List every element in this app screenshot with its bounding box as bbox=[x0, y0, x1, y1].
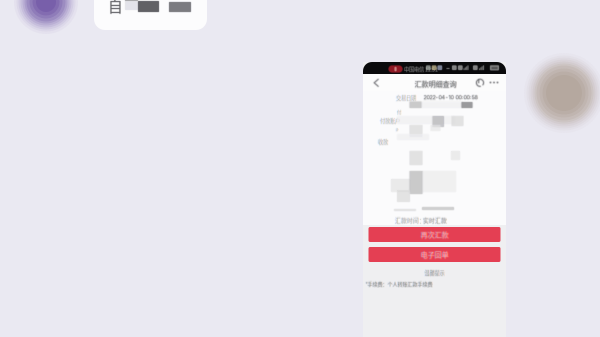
staticText: *手续费：个人转账汇款手续费 bbox=[365, 279, 432, 286]
button[interactable]: 返回 bbox=[367, 74, 385, 91]
staticText: 汇款时间： bbox=[394, 217, 424, 225]
staticText: 实时汇款 bbox=[423, 215, 447, 223]
staticText: 实时汇款 bbox=[424, 216, 448, 224]
staticText: 2022-04-10 00:00:58 bbox=[423, 95, 477, 101]
staticText: *手续费：个人转账汇款手续费 bbox=[366, 280, 433, 287]
staticText: 再次汇款 bbox=[420, 230, 448, 240]
staticText: 温馨提示 bbox=[424, 268, 444, 276]
staticText: *手续费：个人转账汇款手续费 bbox=[366, 281, 433, 288]
staticText: 电子回单 bbox=[421, 249, 449, 260]
staticText: 交易日期 bbox=[396, 95, 416, 102]
staticText: 自 bbox=[108, 0, 123, 16]
staticText: 中国电信 12:51 bbox=[405, 66, 439, 73]
staticText: 付款账户 bbox=[380, 116, 400, 124]
staticText: 汇款时间： bbox=[395, 217, 425, 225]
staticText: 2022-04-10 00:00:58 bbox=[423, 94, 477, 101]
staticText: 付 bbox=[397, 110, 401, 116]
staticText: 2022-04-10 00:00:58 bbox=[424, 93, 478, 100]
staticText: 再次汇款 bbox=[420, 229, 448, 240]
staticText: 汇款明细查询 bbox=[415, 79, 457, 90]
staticText: 收款 bbox=[377, 138, 387, 145]
staticText: 自 bbox=[107, 0, 122, 16]
staticText: 收款 bbox=[379, 137, 389, 145]
button[interactable]: 电子回单 bbox=[368, 247, 500, 262]
staticText: 电子回单 bbox=[420, 250, 448, 260]
staticText: 付款账户 bbox=[379, 117, 399, 124]
staticText: 汇款时间： bbox=[394, 216, 424, 224]
staticText: 汇款时间： bbox=[396, 215, 426, 223]
staticText: 汇款明细查询 bbox=[414, 79, 456, 90]
staticText: 自 bbox=[108, 0, 123, 17]
staticText: 汇款时间： bbox=[396, 216, 426, 224]
staticText: 中国电信 12:51 bbox=[404, 65, 438, 72]
staticText: 电子回单 bbox=[420, 250, 448, 260]
staticText: 实时汇款 bbox=[424, 215, 448, 223]
staticText: 实时汇款 bbox=[422, 215, 446, 223]
staticText: 温馨提示 bbox=[424, 269, 444, 276]
staticText: 2022-04-10 00:00:58 bbox=[423, 93, 477, 100]
staticText: 2022-04-10 00:00:58 bbox=[424, 94, 478, 101]
button[interactable]: 刷新 bbox=[472, 74, 488, 91]
staticText: 再次汇款 bbox=[420, 229, 448, 240]
staticText: 付 bbox=[398, 110, 402, 116]
staticText: 再次汇款 bbox=[421, 229, 449, 240]
staticText: 付款账户 bbox=[381, 118, 401, 125]
staticText: *手续费：个人转账汇款手续费 bbox=[365, 280, 432, 287]
staticText: 汇款明细查询 bbox=[415, 78, 457, 88]
staticText: 汇款明细查询 bbox=[414, 78, 456, 88]
staticText: P bbox=[396, 128, 398, 132]
button[interactable]: 再次汇款 bbox=[368, 227, 500, 242]
staticText: 收款 bbox=[379, 139, 389, 146]
staticText: 温馨提示 bbox=[424, 270, 444, 277]
staticText: 再次汇款 bbox=[421, 230, 449, 240]
staticText: 温馨提示 bbox=[424, 270, 444, 277]
staticText: 收款 bbox=[378, 139, 388, 146]
staticText: 自 bbox=[108, 0, 123, 16]
staticText: 再次汇款 bbox=[421, 228, 449, 239]
staticText: 电子回单 bbox=[421, 248, 449, 259]
staticText: 中国电信 12:51 bbox=[403, 65, 437, 72]
staticText: 中国电信 12:51 bbox=[405, 65, 439, 72]
staticText: 汇款时间： bbox=[396, 217, 426, 225]
staticText: 汇款时间： bbox=[395, 216, 425, 224]
staticText: 汇款明细查询 bbox=[415, 78, 457, 89]
staticText: 中国电信 12:51 bbox=[405, 65, 439, 73]
staticText: 付款账户 bbox=[380, 117, 400, 124]
staticText: 付 bbox=[396, 108, 400, 114]
staticText: 自 bbox=[108, 0, 123, 16]
staticText: 电子回单 bbox=[420, 248, 448, 259]
staticText: 汇款明细查询 bbox=[414, 78, 456, 89]
staticText: 汇款时间： bbox=[395, 215, 425, 223]
staticText: 再次汇款 bbox=[420, 228, 448, 239]
staticText: *手续费：个人转账汇款手续费 bbox=[365, 281, 432, 288]
button[interactable]: 更多 bbox=[487, 74, 501, 91]
staticText: 实时汇款 bbox=[422, 217, 446, 225]
staticText: 交易日期 bbox=[397, 94, 417, 101]
staticText: 付款账户 bbox=[379, 118, 399, 125]
staticText: 收款 bbox=[378, 137, 388, 145]
staticText: *手续费：个人转账汇款手续费 bbox=[365, 279, 432, 286]
staticText: P bbox=[395, 128, 397, 132]
staticText: P bbox=[396, 127, 398, 132]
staticText: 温馨提示 bbox=[425, 269, 445, 276]
staticText: 交易日期 bbox=[397, 95, 417, 102]
staticText: 电子回单 bbox=[421, 250, 449, 260]
staticText: 交易日期 bbox=[395, 94, 415, 101]
staticText: 付 bbox=[396, 109, 400, 115]
staticText: 再次汇款 bbox=[420, 230, 448, 240]
staticText: 中国电信 12:51 bbox=[404, 66, 438, 73]
staticText: 温馨提示 bbox=[425, 268, 445, 276]
staticText: 温馨提示 bbox=[424, 268, 444, 276]
staticText: 付 bbox=[397, 108, 401, 114]
staticText: P bbox=[395, 129, 397, 133]
staticText: *手续费：个人转账汇款手续费 bbox=[365, 280, 432, 287]
staticText: 汇款明细查询 bbox=[414, 79, 456, 90]
staticText: 实时汇款 bbox=[422, 216, 446, 224]
staticText: 温馨提示 bbox=[425, 270, 445, 277]
staticText: 中国电信 12:51 bbox=[403, 66, 437, 73]
staticText: 收款 bbox=[379, 138, 389, 145]
staticText: 电子回单 bbox=[420, 248, 448, 259]
staticText: 付 bbox=[398, 108, 402, 114]
staticText: 温馨提示 bbox=[424, 269, 444, 276]
staticText: 付 bbox=[396, 110, 400, 116]
